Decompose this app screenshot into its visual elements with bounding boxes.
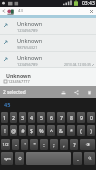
button[interactable]: $ [28,125,35,136]
staticText: 4 [30,114,33,121]
button[interactable]: # [19,125,26,136]
staticText: ? [73,141,76,148]
button[interactable]: ? [70,139,78,150]
staticText: $ [30,127,33,134]
staticText: 9 [80,114,83,121]
staticText: 8 [70,114,73,121]
button[interactable]: 1 [1,112,8,123]
button[interactable]: 1/2 [1,139,10,150]
staticText: 123456789 [17,28,38,33]
staticText: ; [53,141,55,148]
button[interactable]: 0 [87,112,95,123]
staticText: & [59,127,63,134]
button[interactable]: 4 [28,112,35,123]
staticText: 1/2 [2,142,9,147]
staticText: ' [24,141,26,148]
button[interactable]: 5 [37,112,45,123]
button[interactable]: ( [77,125,85,136]
button[interactable]: 9 [77,112,85,123]
staticText: 1234567777 [8,79,30,84]
button[interactable]: @ [10,125,17,136]
button[interactable]: 7 [57,112,65,123]
staticText: 6 [50,114,53,121]
staticText: 0 [90,114,93,121]
button[interactable]: : [40,139,48,150]
staticText: Unknown [17,20,43,28]
staticText: - [15,141,17,148]
button[interactable]: - [12,139,19,150]
button[interactable]: Space [26,152,71,165]
staticText: ! [4,127,6,134]
staticText: 43 [18,8,23,14]
staticText: Unknown [17,54,43,62]
staticText: # [21,127,25,134]
button[interactable]: ; [50,139,58,150]
button[interactable]: . [73,152,82,165]
button[interactable]: Unknown [0,18,96,35]
staticText: 123456789 [17,62,38,67]
staticText: * [70,127,73,134]
button[interactable]: ^ [47,125,55,136]
staticText: 2 selected [3,89,26,96]
button[interactable]: 3 [19,112,26,123]
staticText: 45 [4,101,11,108]
button[interactable]: " [30,139,38,150]
button[interactable]: 8 [67,112,75,123]
button[interactable]: 6 [47,112,55,123]
staticText: , [63,141,65,148]
staticText: 03:43 [82,0,95,7]
button[interactable]: Close [86,7,96,15]
staticText: 3 [21,114,24,121]
button[interactable]: Settings [15,152,24,165]
button[interactable]: % [37,125,45,136]
staticText: 987654321 [17,45,38,50]
button[interactable]: ) [87,125,95,136]
staticText: " [33,141,36,148]
button[interactable]: Unknown [0,35,96,52]
staticText: sym [4,156,11,161]
button[interactable]: Delete [83,86,96,98]
staticText: Unknown [17,37,43,45]
staticText: ( [80,127,82,134]
button[interactable]: Search [84,152,95,165]
button[interactable]: ' [21,139,28,150]
staticText: @ [11,127,16,134]
button[interactable]: * [67,125,75,136]
button[interactable]: Backspace [80,139,95,150]
staticText: ) [90,127,92,134]
staticText: . [77,155,79,162]
button[interactable]: 1234567777 [4,79,30,84]
staticText: 2 [12,114,15,121]
button[interactable]: , [60,139,68,150]
staticText: 2013.04.12 00:35 [64,62,91,67]
staticText: % [39,127,44,134]
button[interactable]: 2 [10,112,17,123]
staticText: 1 [3,114,6,121]
staticText: 7 [60,114,63,121]
button[interactable]: sym [1,152,13,165]
button[interactable]: Share [70,86,83,98]
staticText: : [43,141,45,148]
staticText: ^ [50,127,53,134]
staticText: 5 [40,114,43,121]
button[interactable]: Back [0,7,7,15]
button[interactable]: ! [1,125,8,136]
staticText: Unknown [6,72,31,79]
button[interactable]: & [57,125,65,136]
button[interactable]: Save [57,86,70,98]
button[interactable]: Unknown [0,52,96,68]
